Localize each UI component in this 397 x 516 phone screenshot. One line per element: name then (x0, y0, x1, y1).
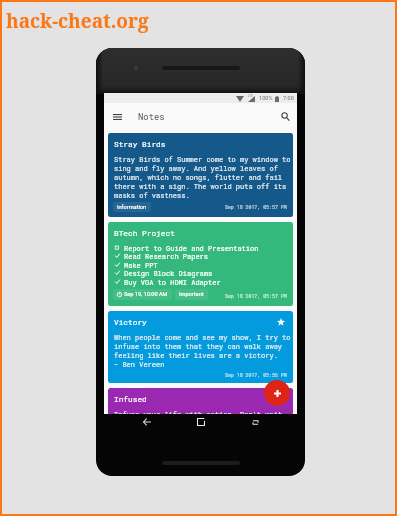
staticText: Information (117, 204, 147, 211)
staticText: Sep 18 2017, 05:57 PM (225, 293, 287, 299)
button[interactable]: Stray Birds (108, 133, 293, 217)
staticText: Buy VGA to HDMI Adapter (124, 278, 221, 287)
staticText: When people come and see my show, I try … (114, 333, 291, 369)
button[interactable]: Information (113, 202, 151, 212)
staticText: Notes (138, 111, 165, 123)
staticText: Read Research Papers (124, 252, 209, 261)
button[interactable]: Recents (248, 415, 262, 429)
staticText: Victory (114, 317, 147, 327)
button[interactable]: Infused (108, 388, 293, 415)
staticText: Sep 18 2017, 05:56 PM (225, 372, 287, 378)
button[interactable]: Important (175, 289, 208, 300)
staticText: Infuse your life with action. Don't wait (114, 410, 283, 415)
staticText: 7:00 (283, 95, 294, 102)
staticText: Make PPT (124, 261, 158, 270)
staticText: hack-cheat.org (6, 8, 149, 34)
staticText: Stray Birds (114, 139, 166, 149)
staticText: Sep 18 2017, 05:57 PM (225, 204, 287, 210)
staticText: BTech Project (114, 228, 175, 238)
button[interactable]: Back (140, 415, 154, 429)
staticText: Design Block Diagrams (124, 269, 213, 278)
staticText: Important (179, 291, 204, 298)
staticText: 100% (259, 95, 273, 102)
button[interactable]: Home (194, 415, 208, 429)
button[interactable]: Add note (264, 380, 290, 406)
staticText: Sep 19, 10:00 AM (124, 291, 168, 298)
staticText: Infused (114, 394, 147, 404)
button[interactable]: Sep 19, 10:00 AM (113, 289, 172, 300)
staticText: Report to Guide and Presentation (124, 244, 259, 253)
staticText: LTE (248, 94, 254, 98)
button[interactable]: Search (277, 108, 294, 125)
button[interactable]: Menu (109, 108, 126, 125)
button[interactable]: Victory (108, 311, 293, 383)
staticText: Stray Birds of Summer come to my window … (114, 155, 291, 200)
button[interactable]: BTech Project (108, 222, 293, 306)
